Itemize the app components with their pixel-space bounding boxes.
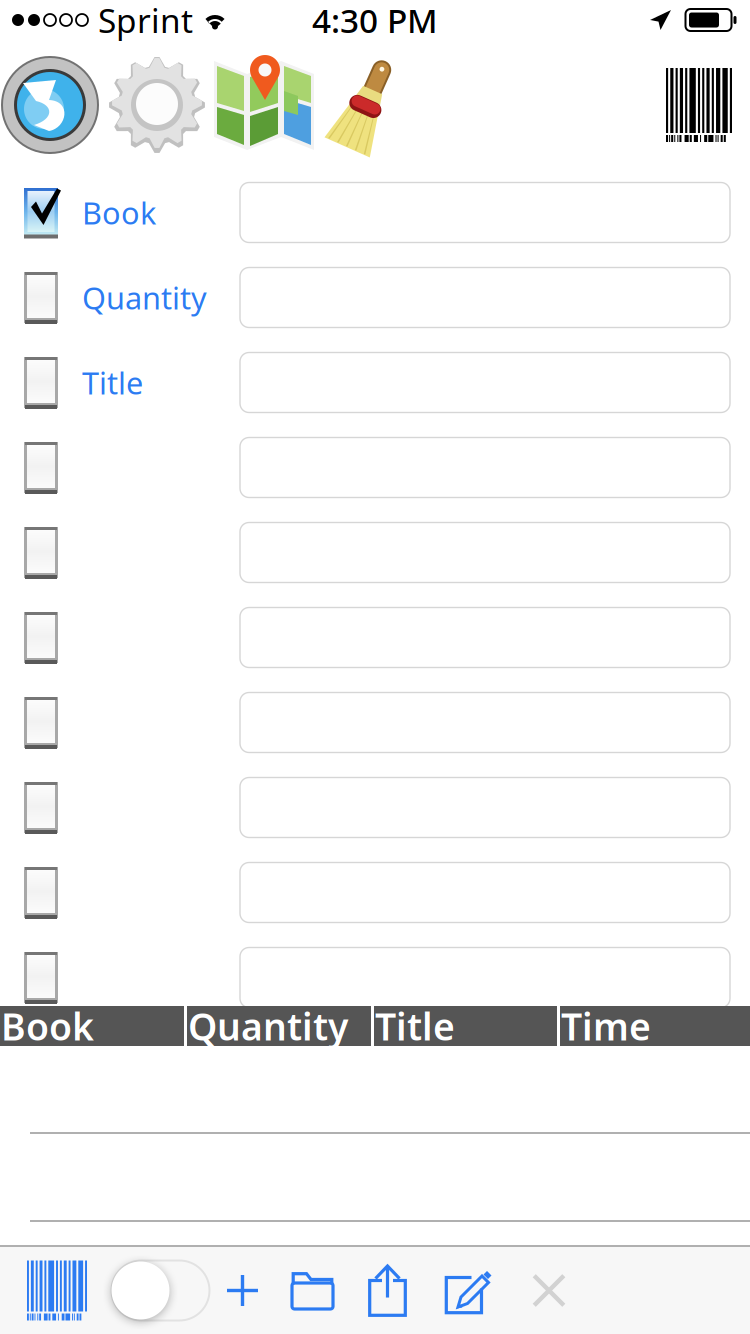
button[interactable]: Row checkbox: [0, 601, 82, 673]
staticText: Quantity: [188, 1001, 348, 1051]
staticText: Time: [561, 1001, 651, 1051]
button[interactable]: Settings: [100, 55, 214, 155]
button[interactable]: Close: [509, 1247, 589, 1334]
button[interactable]: Text field: [240, 862, 730, 922]
button[interactable]: Text field: [240, 182, 730, 242]
button[interactable]: Quantity: [82, 261, 240, 333]
button[interactable]: Title: [0, 346, 82, 418]
button[interactable]: Undo: [0, 55, 100, 155]
staticText: 4:30 PM: [312, 0, 438, 42]
button[interactable]: Map: [214, 55, 314, 155]
button[interactable]: Compose: [428, 1247, 509, 1334]
button[interactable]: Row checkbox: [0, 856, 82, 928]
button[interactable]: Row checkbox: [0, 431, 82, 503]
button[interactable]: Title: [374, 1006, 557, 1046]
button[interactable]: Text field: [240, 267, 730, 327]
button[interactable]: Book: [82, 176, 240, 248]
button[interactable]: Row checkbox: [0, 941, 82, 1013]
button[interactable]: Clear: [314, 55, 418, 155]
button[interactable]: Scan barcode: [666, 68, 750, 142]
button[interactable]: Text field: [240, 607, 730, 667]
button[interactable]: Text field: [240, 947, 730, 1007]
staticText: Title: [82, 362, 143, 403]
button[interactable]: Text field: [240, 692, 730, 752]
button[interactable]: Time: [560, 1006, 750, 1046]
button[interactable]: Title: [82, 346, 240, 418]
staticText: Quantity: [82, 277, 207, 318]
button[interactable]: Share: [347, 1247, 428, 1334]
button[interactable]: Book: [0, 176, 82, 248]
button[interactable]: Text field: [240, 777, 730, 837]
button[interactable]: Row checkbox: [0, 686, 82, 758]
button[interactable]: Book: [0, 1006, 184, 1046]
button[interactable]: Text field: [240, 437, 730, 497]
staticText: Sprint: [98, 0, 193, 42]
staticText: Book: [82, 192, 156, 233]
button[interactable]: Row checkbox: [0, 516, 82, 588]
staticText: Title: [375, 1001, 455, 1051]
button[interactable]: Toggle: [114, 1247, 207, 1334]
button[interactable]: Field label: [82, 941, 240, 1013]
button[interactable]: Row checkbox: [0, 771, 82, 843]
button[interactable]: Quantity: [187, 1006, 371, 1046]
button[interactable]: Text field: [240, 352, 730, 412]
button[interactable]: Text field: [240, 522, 730, 582]
button[interactable]: Open folder: [278, 1247, 347, 1334]
button[interactable]: Scan barcode: [0, 1247, 114, 1334]
button[interactable]: Add: [207, 1247, 278, 1334]
button[interactable]: Quantity: [0, 261, 82, 333]
staticText: Book: [1, 1001, 94, 1051]
